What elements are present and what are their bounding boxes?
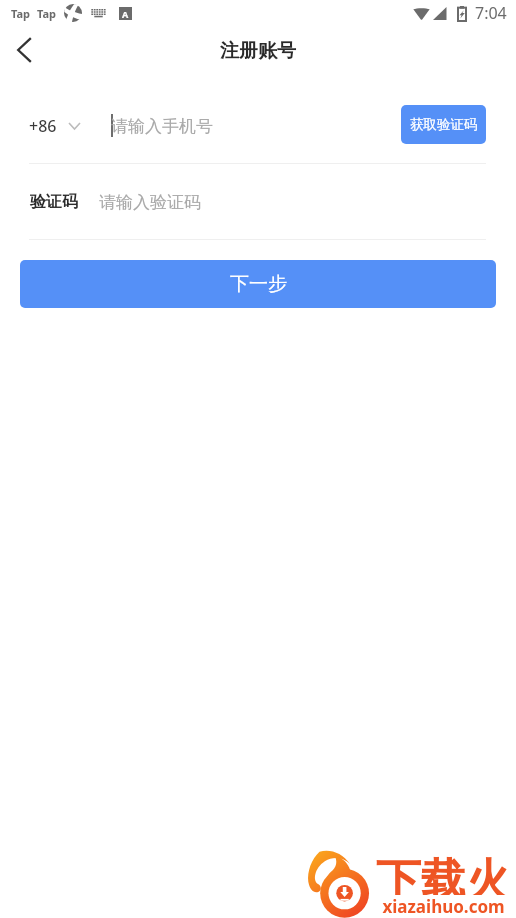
staticText: Tap — [37, 6, 57, 21]
staticText: 下载火 — [376, 853, 511, 895]
staticText: A — [122, 8, 129, 20]
staticText: xiazaihuo.com — [382, 895, 505, 913]
staticText: 验证码 — [30, 192, 78, 212]
button[interactable]: Back — [0, 26, 48, 74]
staticText: 请输入手机号 — [111, 116, 213, 137]
staticText: 请输入验证码 — [99, 192, 201, 213]
staticText: 下一步 — [230, 272, 287, 296]
button[interactable]: 获取验证码 — [401, 105, 486, 144]
staticText: 获取验证码 — [410, 116, 478, 133]
staticText: Tap — [11, 6, 31, 21]
staticText: +86 — [29, 115, 57, 137]
button[interactable] — [20, 100, 110, 152]
staticText: 7:04 — [475, 2, 507, 24]
button[interactable]: 下一步 — [20, 260, 496, 308]
button[interactable] — [20, 176, 260, 228]
staticText: 注册账号 — [220, 39, 296, 63]
